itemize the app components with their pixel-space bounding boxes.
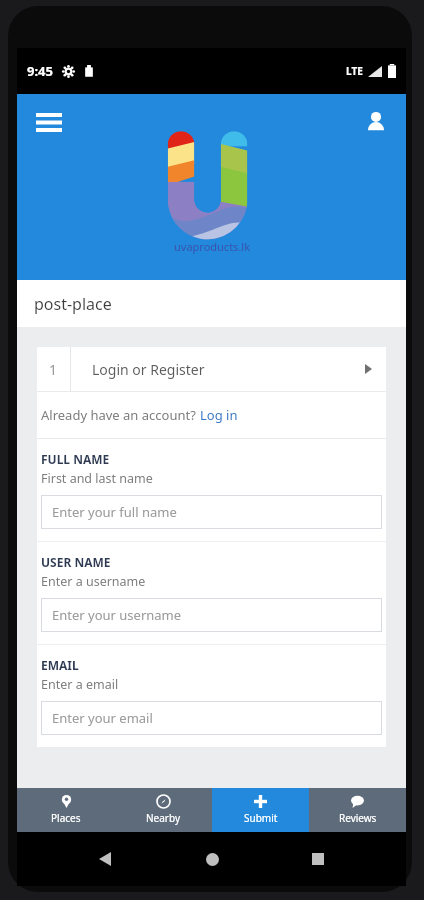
- button[interactable]: Nearby: [115, 788, 212, 832]
- button[interactable]: Places: [17, 788, 115, 832]
- button[interactable]: Log in: [200, 406, 238, 424]
- button[interactable]: Submit: [212, 788, 309, 832]
- staticText: EMAIL: [41, 657, 79, 673]
- button[interactable]: Account: [358, 104, 394, 140]
- staticText: Enter a email: [41, 676, 119, 693]
- staticText: Nearby: [146, 811, 181, 825]
- staticText: 1: [49, 360, 58, 379]
- staticText: LTE: [346, 64, 363, 78]
- button[interactable]: Recents: [300, 841, 336, 877]
- staticText: post-place: [34, 293, 112, 315]
- button[interactable]: Reviews: [309, 788, 406, 832]
- button[interactable]: Enter your full name: [52, 495, 382, 529]
- staticText: Enter a username: [41, 573, 146, 590]
- staticText: Reviews: [339, 811, 377, 825]
- staticText: Log in: [200, 406, 238, 424]
- button[interactable]: Home: [194, 841, 230, 877]
- button[interactable]: Menu: [31, 104, 67, 140]
- staticText: uvaproducts.lk: [174, 239, 251, 254]
- staticText: Already have an account?: [41, 406, 200, 424]
- staticText: USER NAME: [41, 554, 111, 570]
- staticText: Login or Register: [92, 360, 205, 379]
- staticText: FULL NAME: [41, 451, 110, 467]
- button[interactable]: Enter your email: [52, 701, 382, 735]
- staticText: Places: [51, 811, 81, 825]
- staticText: Enter your email: [52, 709, 153, 727]
- button[interactable]: Back: [87, 841, 123, 877]
- staticText: First and last name: [41, 470, 153, 487]
- staticText: Submit: [244, 811, 278, 825]
- staticText: Enter your full name: [52, 503, 177, 521]
- button[interactable]: Enter your username: [52, 598, 382, 632]
- staticText: 9:45: [27, 62, 53, 80]
- staticText: Enter your username: [52, 606, 182, 624]
- button[interactable]: 1: [37, 347, 386, 391]
